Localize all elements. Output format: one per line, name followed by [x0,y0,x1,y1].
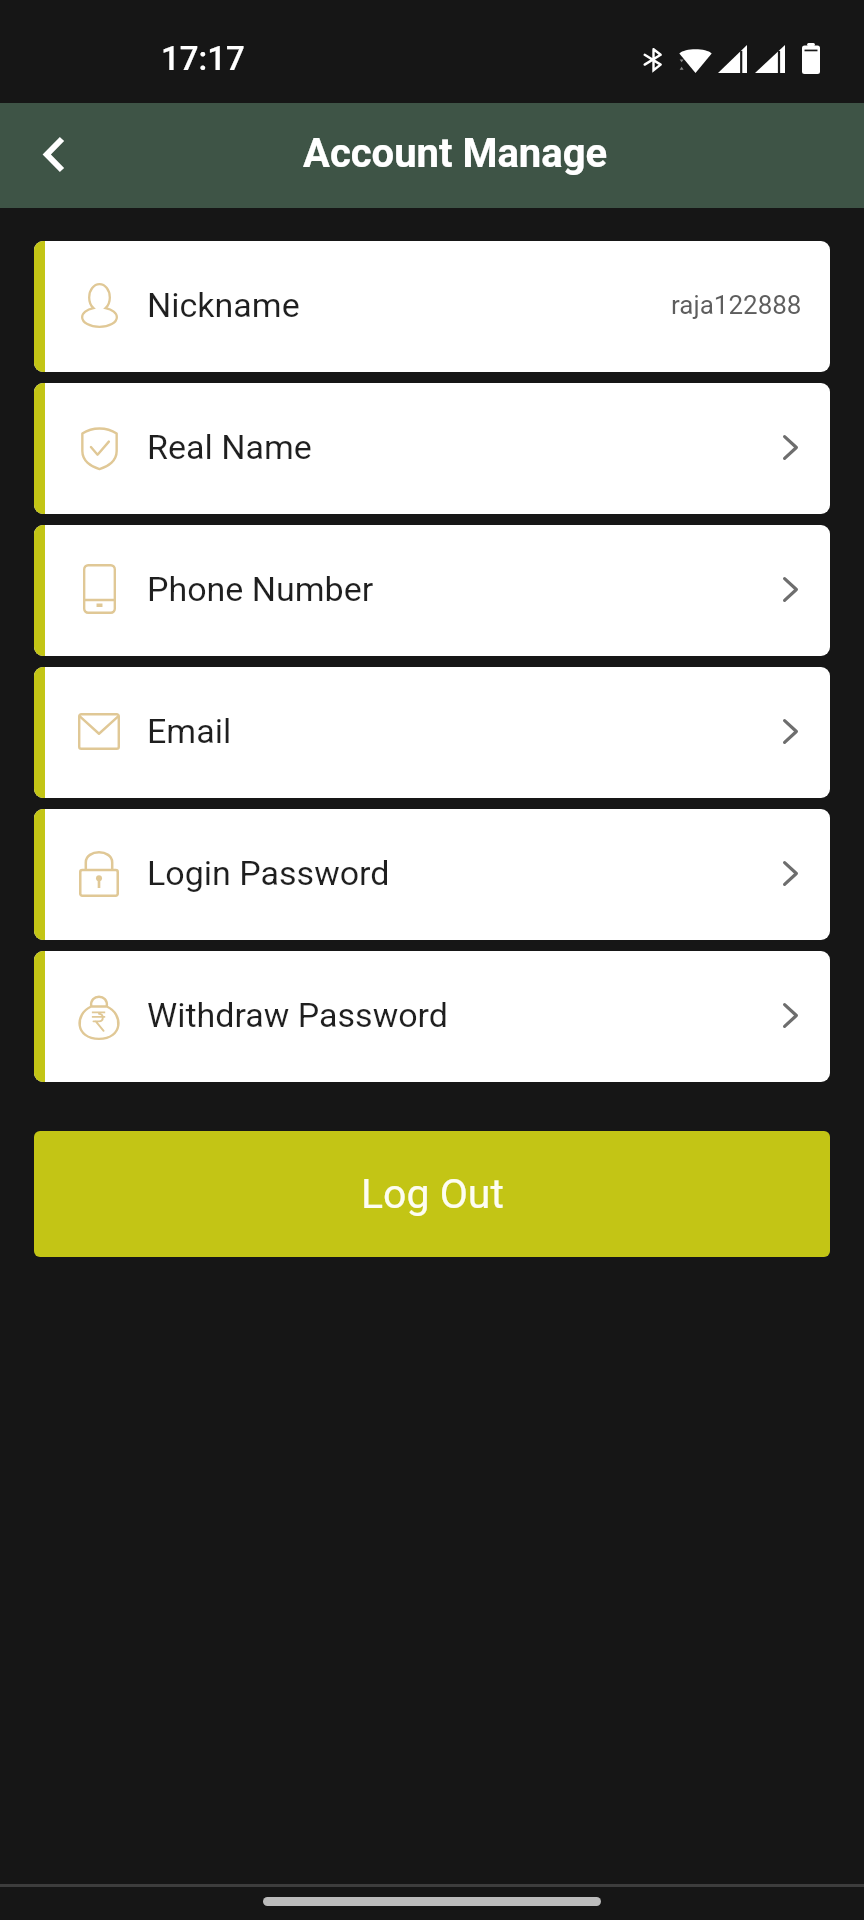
button[interactable]: Back [29,132,77,180]
staticText: 17:17 [161,39,245,78]
button[interactable]: Real Name [34,383,830,514]
staticText: Withdraw Password [147,995,448,1035]
staticText: Log Out [361,1170,504,1218]
staticText: Email [147,711,232,751]
button[interactable]: Nickname [34,241,830,372]
staticText: Real Name [147,427,312,467]
staticText: raja122888 [671,290,802,320]
staticText: Account Manage [303,130,608,177]
staticText: Phone Number [147,569,374,609]
button[interactable]: Login Password [34,809,830,940]
staticText: Nickname [147,285,300,325]
button[interactable]: Log Out [34,1131,830,1257]
button[interactable]: Withdraw Password [34,951,830,1082]
staticText: Login Password [147,853,390,893]
button[interactable]: Phone Number [34,525,830,656]
button[interactable]: Email [34,667,830,798]
